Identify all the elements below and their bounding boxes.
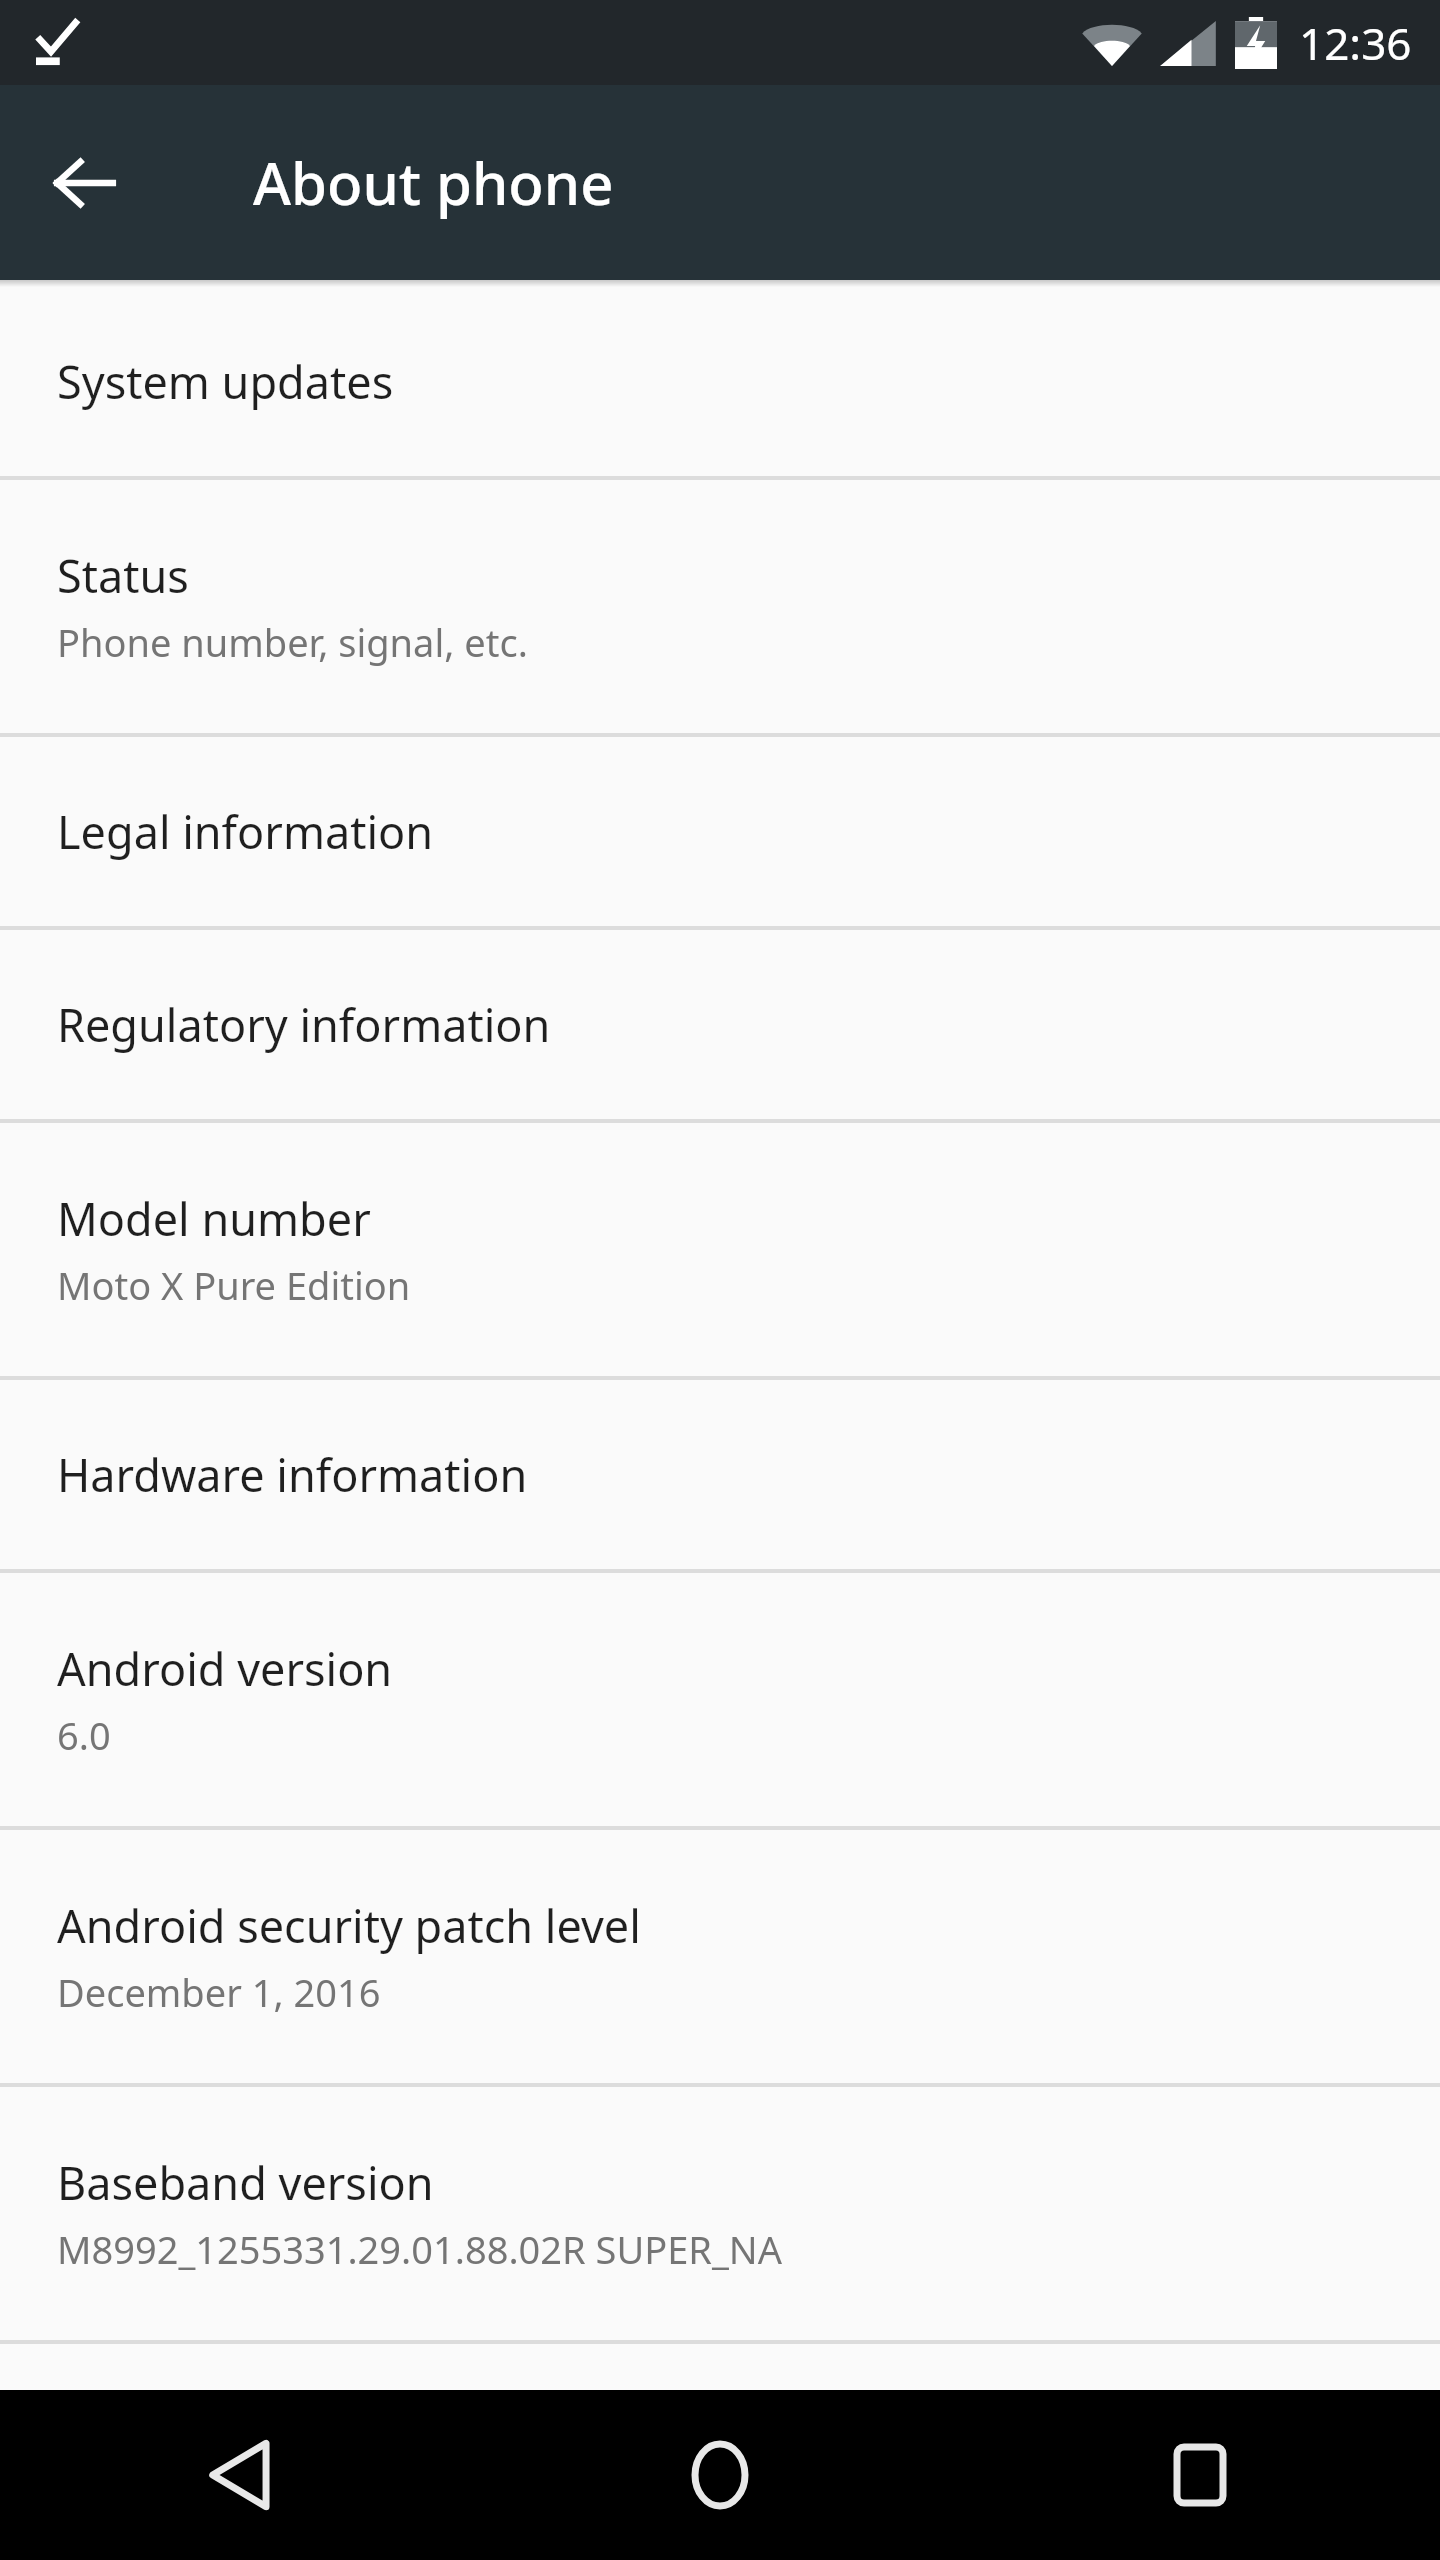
button[interactable]: Baseband version: [0, 2087, 1440, 2340]
button[interactable]: Android security patch level: [0, 1830, 1440, 2083]
staticText: Android version: [57, 1638, 393, 1699]
button[interactable]: Regulatory information: [0, 930, 1440, 1119]
button[interactable]: Status: [0, 480, 1440, 733]
button[interactable]: Back: [0, 2390, 480, 2560]
button[interactable]: Android version: [0, 1573, 1440, 1826]
button[interactable]: Recent apps: [960, 2390, 1440, 2560]
staticText: December 1, 2016: [57, 1966, 381, 2018]
staticText: 12:36: [1299, 13, 1412, 73]
staticText: Android security patch level: [57, 1895, 641, 1956]
staticText: 6.0: [57, 1709, 111, 1761]
button[interactable]: Home: [480, 2390, 960, 2560]
staticText: M8992_1255331.29.01.88.02R SUPER_NA: [57, 2223, 783, 2275]
button[interactable]: Legal information: [0, 737, 1440, 926]
staticText: Model number: [57, 1188, 371, 1249]
staticText: Legal information: [57, 801, 434, 862]
staticText: About phone: [253, 143, 614, 222]
staticText: Moto X Pure Edition: [57, 1259, 411, 1311]
button[interactable]: Model number: [0, 1123, 1440, 1376]
staticText: Status: [57, 545, 189, 606]
staticText: Hardware information: [57, 1444, 528, 1505]
staticText: Phone number, signal, etc.: [57, 616, 528, 668]
button[interactable]: Back: [30, 128, 140, 238]
button[interactable]: Hardware information: [0, 1380, 1440, 1569]
staticText: System updates: [57, 351, 394, 412]
staticText: Regulatory information: [57, 994, 551, 1055]
button[interactable]: System updates: [0, 287, 1440, 476]
staticText: Baseband version: [57, 2152, 434, 2213]
